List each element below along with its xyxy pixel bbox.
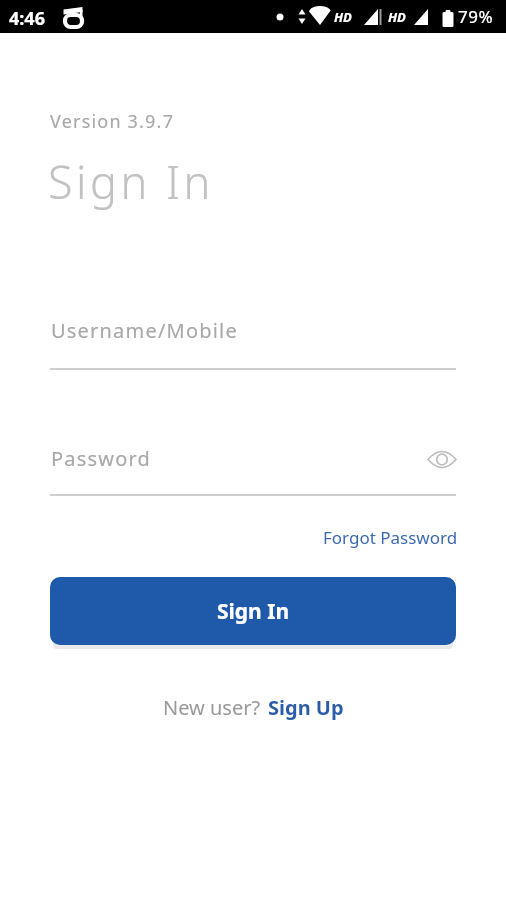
staticText: Sign In xyxy=(217,597,290,626)
staticText: Password xyxy=(51,445,152,472)
staticText: Version 3.9.7 xyxy=(50,109,175,134)
staticText: HD xyxy=(388,8,406,26)
staticText: Forgot Password xyxy=(323,526,458,549)
button[interactable]: Username/Mobile xyxy=(50,312,456,370)
button[interactable]: Sign Up xyxy=(268,694,344,721)
staticText: Sign Up xyxy=(268,694,344,721)
staticText: New user? xyxy=(163,694,266,721)
staticText: Sign In xyxy=(48,151,214,212)
staticText: HD xyxy=(334,8,352,26)
button[interactable] xyxy=(426,446,458,472)
button[interactable]: Password xyxy=(50,440,456,496)
staticText: 4:46 xyxy=(9,6,45,31)
staticText: Username/Mobile xyxy=(51,317,238,344)
button[interactable]: Forgot Password xyxy=(323,526,458,549)
staticText: 79% xyxy=(458,5,494,28)
button[interactable]: Sign In xyxy=(50,577,456,645)
